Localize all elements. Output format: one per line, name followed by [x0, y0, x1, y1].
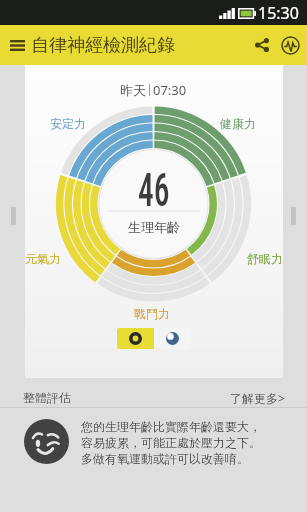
- button[interactable]: 整體評估: [0, 378, 307, 407]
- button[interactable]: Ring view: [117, 328, 154, 349]
- staticText: 了解更多>: [230, 390, 285, 406]
- staticText: 15:30: [258, 2, 299, 24]
- staticText: 46: [138, 163, 170, 218]
- staticText: 元氣力: [25, 251, 61, 266]
- staticText: 健康力: [220, 116, 256, 131]
- staticText: 07:30: [153, 81, 187, 99]
- staticText: 生理年齡: [128, 219, 180, 235]
- button[interactable]: Share: [248, 31, 276, 59]
- staticText: 整體評估: [23, 390, 71, 405]
- staticText: 戰鬥力: [134, 306, 170, 321]
- button[interactable]: Menu: [3, 31, 31, 59]
- staticText: 您的生理年齡比實際年齡還要大， 容易疲累，可能正處於壓力之下。 多做有氧運動或許…: [81, 419, 261, 466]
- staticText: 舒眠力: [247, 251, 283, 266]
- staticText: 自律神經檢測紀錄: [31, 34, 175, 57]
- button[interactable]: Measure: [276, 31, 304, 59]
- button[interactable]: Balance view: [154, 328, 191, 349]
- staticText: 安定力: [50, 116, 86, 131]
- staticText: 昨天: [120, 82, 146, 98]
